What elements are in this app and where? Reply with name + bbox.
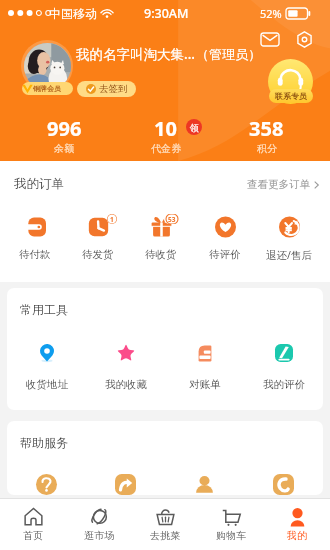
button[interactable]: 首页 <box>0 499 66 550</box>
button[interactable]: 收货地址 <box>7 343 86 391</box>
staticText: 代金券 <box>151 142 181 155</box>
staticText: 余额 <box>54 142 74 155</box>
button[interactable]: 10 <box>115 115 216 155</box>
button[interactable]: 我的评价 <box>244 343 323 391</box>
button[interactable]: 联系专员 <box>268 59 313 104</box>
staticText: 待付款 <box>19 248 51 261</box>
button[interactable]: 查看更多订单 <box>247 178 319 191</box>
button[interactable]: 联系专员 <box>269 89 313 103</box>
button[interactable]: 购物车 <box>198 499 264 550</box>
staticText: （管理员） <box>196 46 261 62</box>
staticText: 9:30AM <box>144 5 189 22</box>
button[interactable]: Messages <box>257 26 283 52</box>
button[interactable]: 对账单 <box>165 343 244 391</box>
staticText: 查看更多订单 <box>247 178 310 191</box>
button[interactable]: Avatar <box>21 40 73 92</box>
staticText: 我的名字叫淘大集... <box>76 45 196 63</box>
button[interactable]: Settings <box>291 26 317 52</box>
staticText: 去签到 <box>99 83 128 95</box>
staticText: 1 <box>110 215 114 224</box>
staticText: 中国移动 <box>49 6 97 21</box>
staticText: 待收货 <box>145 248 177 261</box>
staticText: 逛市场 <box>84 529 114 542</box>
button[interactable]: 1 <box>66 217 129 261</box>
staticText: 我的评价 <box>263 378 305 391</box>
button[interactable]: 我的收藏 <box>86 343 165 391</box>
staticText: 帮助服务 <box>20 435 68 450</box>
button[interactable]: 996 <box>13 115 115 155</box>
button[interactable]: 退还/售后 <box>257 217 321 262</box>
staticText: 待发货 <box>82 248 114 261</box>
staticText: 对账单 <box>189 378 221 391</box>
button[interactable]: 铜牌会员 <box>22 82 73 95</box>
button[interactable]: Help 1 <box>86 474 165 495</box>
staticText: 53 <box>168 215 176 224</box>
staticText: 领 <box>190 122 199 133</box>
button[interactable]: 待评价 <box>193 217 257 261</box>
staticText: 待评价 <box>209 248 241 261</box>
staticText: 退还/售后 <box>266 248 312 262</box>
button[interactable]: 去签到 <box>77 81 136 97</box>
staticText: 收货地址 <box>26 378 68 391</box>
button[interactable]: 53 <box>129 217 193 261</box>
button[interactable]: 待付款 <box>3 217 66 261</box>
staticText: 我的订单 <box>14 176 64 192</box>
button[interactable]: Help 0 <box>7 474 86 495</box>
staticText: 52% <box>260 6 282 21</box>
button[interactable]: 去挑菜 <box>132 499 198 550</box>
staticText: 铜牌会员 <box>33 84 61 93</box>
button[interactable]: Help 2 <box>165 474 244 495</box>
staticText: 首页 <box>23 529 43 542</box>
staticText: 10 <box>154 115 177 142</box>
staticText: 我的收藏 <box>105 378 147 391</box>
button[interactable]: Help 3 <box>244 474 323 495</box>
staticText: 购物车 <box>216 529 246 542</box>
button[interactable]: 我的 <box>264 499 330 550</box>
staticText: 996 <box>47 115 82 142</box>
button[interactable]: 逛市场 <box>66 499 132 550</box>
staticText: 去挑菜 <box>150 529 180 542</box>
staticText: 358 <box>249 115 284 142</box>
button[interactable]: 358 <box>216 115 317 155</box>
staticText: 积分 <box>257 142 277 155</box>
staticText: 常用工具 <box>20 302 68 317</box>
staticText: 联系专员 <box>275 91 307 101</box>
staticText: 我的 <box>287 529 307 542</box>
